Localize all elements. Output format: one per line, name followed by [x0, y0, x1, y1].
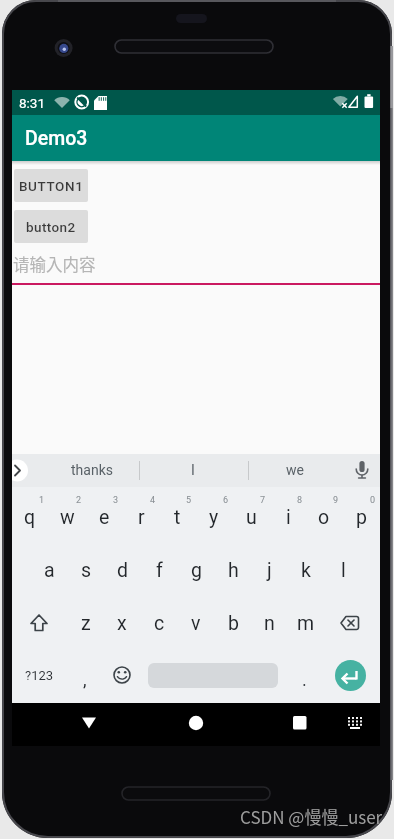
staticText: w [60, 506, 75, 529]
button[interactable] [335, 608, 365, 638]
button[interactable]: I [165, 456, 221, 484]
staticText: y [209, 506, 219, 529]
button[interactable] [182, 709, 210, 737]
button[interactable]: button2 [14, 210, 88, 243]
staticText: f [156, 559, 163, 582]
button[interactable]: a [31, 556, 67, 584]
button[interactable]: d [104, 556, 140, 584]
staticText: 4 [150, 495, 156, 506]
button[interactable] [24, 608, 54, 638]
staticText: a [44, 559, 55, 582]
staticText: k [301, 559, 311, 582]
staticText: n [264, 612, 275, 635]
staticText: I [191, 462, 195, 478]
staticText: z [81, 612, 91, 635]
staticText: 3 [113, 495, 119, 506]
staticText: we [286, 462, 304, 478]
button[interactable] [335, 660, 366, 691]
button[interactable]: f [141, 556, 177, 584]
staticText: h [228, 559, 239, 582]
button[interactable]: k [288, 556, 324, 584]
staticText: 8 [297, 495, 303, 506]
button[interactable] [107, 660, 137, 690]
staticText: i [286, 506, 291, 529]
button[interactable]: r [123, 503, 159, 531]
staticText: CSDN @慢慢_user [240, 804, 383, 829]
button[interactable]: BUTTON1 [14, 169, 88, 202]
button[interactable]: we [267, 456, 323, 484]
button[interactable]: , [73, 666, 97, 692]
button[interactable]: h [215, 556, 251, 584]
staticText: 9 [333, 495, 339, 506]
button[interactable]: g [178, 556, 214, 584]
staticText: thanks [71, 462, 113, 478]
staticText: o [318, 506, 330, 529]
button[interactable]: u [233, 503, 269, 531]
staticText: 0 [370, 495, 376, 506]
button[interactable]: o [306, 503, 342, 531]
button[interactable]: q [12, 503, 48, 531]
staticText: 1 [39, 495, 45, 506]
button[interactable]: t [159, 503, 195, 531]
button[interactable]: . [292, 666, 316, 692]
button[interactable]: y [196, 503, 232, 531]
staticText: v [191, 612, 201, 635]
staticText: j [267, 559, 272, 582]
staticText: c [154, 612, 165, 635]
button[interactable]: x [104, 609, 140, 637]
staticText: p [356, 506, 367, 529]
staticText: 请输入内容 [13, 252, 96, 276]
staticText: ?123 [25, 668, 54, 683]
staticText: 6 [223, 495, 229, 506]
staticText: Demo3 [25, 127, 88, 150]
button[interactable]: b [215, 609, 251, 637]
button[interactable]: e [86, 503, 122, 531]
button[interactable]: n [251, 609, 287, 637]
staticText: q [24, 506, 36, 529]
button[interactable]: z [68, 609, 104, 637]
staticText: e [99, 506, 110, 529]
staticText: m [297, 612, 315, 635]
button[interactable]: j [251, 556, 287, 584]
staticText: u [246, 506, 257, 529]
button[interactable]: 请输入内容 [13, 252, 133, 276]
button[interactable]: s [68, 556, 104, 584]
button[interactable] [286, 709, 314, 737]
button[interactable] [342, 709, 370, 737]
staticText: d [117, 559, 128, 582]
staticText: s [81, 559, 92, 582]
staticText: , [83, 669, 87, 690]
staticText: BUTTON1 [19, 178, 84, 194]
staticText: b [228, 612, 239, 635]
staticText: 7 [260, 495, 266, 506]
button[interactable]: p [343, 503, 379, 531]
button[interactable]: i [270, 503, 306, 531]
staticText: g [191, 559, 202, 582]
staticText: 8:31 [19, 95, 46, 111]
staticText: l [341, 559, 346, 582]
staticText: x [117, 612, 127, 635]
staticText: t [174, 506, 181, 529]
staticText: 5 [186, 495, 192, 506]
button[interactable]: w [49, 503, 85, 531]
button[interactable]: c [141, 609, 177, 637]
button[interactable]: ?123 [21, 664, 57, 686]
button[interactable]: thanks [60, 456, 124, 484]
staticText: r [138, 506, 145, 529]
staticText: . [302, 669, 307, 690]
button[interactable]: v [178, 609, 214, 637]
staticText: button2 [26, 219, 76, 235]
button[interactable] [75, 709, 103, 737]
button[interactable]: l [325, 556, 361, 584]
button[interactable]: m [288, 609, 324, 637]
staticText: 2 [76, 495, 82, 506]
